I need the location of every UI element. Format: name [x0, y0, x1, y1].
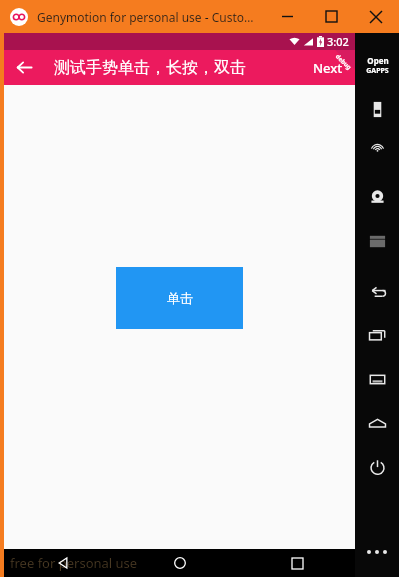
button[interactable]: Record: [355, 219, 399, 263]
staticText: 单击: [167, 290, 193, 306]
staticText: free for personal use: [10, 554, 138, 572]
button[interactable]: 单击: [116, 267, 243, 329]
staticText: 测试手势单击，长按，双击: [54, 58, 246, 78]
button[interactable]: More options: [355, 537, 399, 567]
button[interactable]: Home: [156, 549, 204, 577]
staticText: Next: [313, 59, 343, 77]
button[interactable]: Recents: [355, 313, 399, 357]
button[interactable]: Power: [355, 445, 399, 489]
button[interactable]: Menu: [355, 357, 399, 401]
button[interactable]: Maximize: [309, 0, 353, 33]
button[interactable]: Back: [4, 50, 44, 85]
button[interactable]: Recents: [273, 549, 321, 577]
staticText: 3:02: [327, 34, 349, 49]
button[interactable]: Back: [355, 269, 399, 313]
button[interactable]: Open GAPPS: [355, 43, 399, 87]
staticText: Open: [367, 55, 389, 66]
staticText: Genymotion for personal use - Custo…: [37, 9, 254, 25]
staticText: GAPPS: [366, 66, 389, 76]
staticText: debug: [334, 52, 353, 72]
button[interactable]: Home: [355, 401, 399, 445]
button[interactable]: Back: [39, 549, 87, 577]
button[interactable]: Camera: [355, 175, 399, 219]
button[interactable]: Battery: [355, 87, 399, 131]
button[interactable]: Close: [353, 0, 399, 33]
button[interactable]: Minimize: [265, 0, 309, 33]
button[interactable]: GPS: [355, 131, 399, 175]
button[interactable]: Next: [301, 50, 355, 85]
